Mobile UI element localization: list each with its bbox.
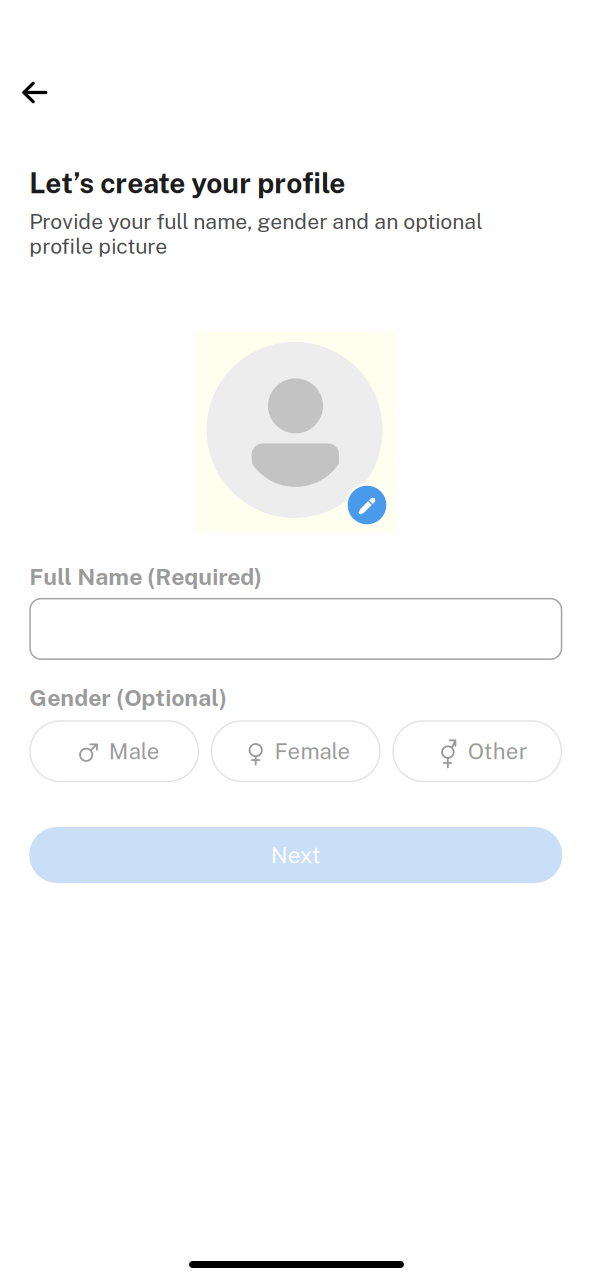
- button[interactable]: Female: [211, 720, 381, 782]
- button[interactable]: Change profile photo: [195, 332, 395, 532]
- button[interactable]: Back: [13, 70, 57, 114]
- button[interactable]: Male: [29, 720, 199, 782]
- staticText: Female: [275, 738, 351, 764]
- staticText: Gender (Optional): [29, 684, 227, 711]
- button[interactable]: Full Name: [29, 598, 562, 660]
- button[interactable]: Next: [29, 827, 562, 883]
- staticText: Full Name (Required): [29, 563, 262, 590]
- staticText: Male: [109, 738, 160, 764]
- staticText: Let’s create your profile: [29, 167, 345, 200]
- staticText: Next: [271, 842, 321, 868]
- staticText: Other: [468, 738, 528, 764]
- staticText: Provide your full name, gender and an op…: [29, 209, 482, 258]
- button[interactable]: Other: [392, 720, 562, 782]
